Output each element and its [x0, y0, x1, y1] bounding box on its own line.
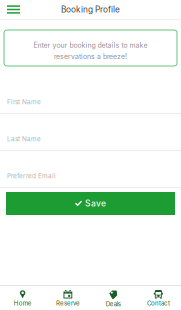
button[interactable]: Reserve: [45, 286, 90, 310]
button[interactable]: Open menu: [0, 0, 27, 19]
staticText: Enter your booking details to make: [33, 41, 147, 49]
staticText: Last Name: [7, 135, 41, 143]
staticText: Contact: [147, 300, 170, 307]
button[interactable]: Last Name: [0, 114, 181, 151]
button[interactable]: Save: [6, 192, 175, 215]
button[interactable]: Preferred Email: [0, 151, 181, 188]
staticText: Deals: [106, 300, 121, 308]
staticText: Reserve: [56, 299, 80, 307]
staticText: Save: [85, 198, 106, 209]
staticText: Preferred Email: [7, 172, 56, 180]
button[interactable]: Contact: [136, 286, 181, 310]
button[interactable]: Deals: [90, 286, 136, 310]
staticText: Booking Profile: [61, 4, 120, 14]
staticText: reservations a breeze!: [54, 52, 127, 61]
button[interactable]: Home: [0, 286, 45, 310]
staticText: First Name: [7, 98, 41, 106]
staticText: Home: [14, 299, 32, 307]
button[interactable]: First Name: [0, 77, 181, 114]
